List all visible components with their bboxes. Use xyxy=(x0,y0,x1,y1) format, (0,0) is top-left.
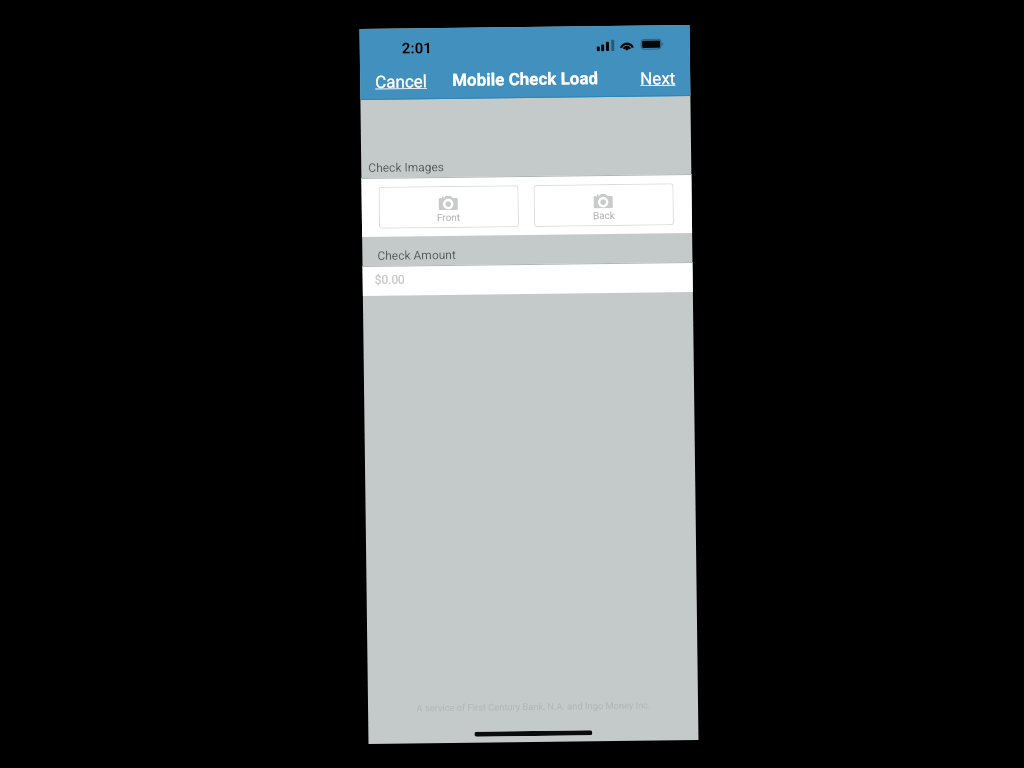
button[interactable]: Capture Front of check xyxy=(378,185,519,229)
button[interactable]: $0.00 xyxy=(362,262,693,296)
staticText: Check Images xyxy=(368,160,444,175)
staticText: 2:01 xyxy=(402,39,433,58)
staticText: Mobile Check Load xyxy=(452,68,598,90)
staticText: Check Amount xyxy=(377,248,456,263)
other: Signal, Wi-Fi and battery status xyxy=(597,38,665,51)
button[interactable]: Next xyxy=(629,63,687,94)
button[interactable]: Cancel xyxy=(364,66,438,97)
staticText: $0.00 xyxy=(375,272,406,287)
staticText: Back xyxy=(593,210,615,222)
staticText: Cancel xyxy=(375,71,427,92)
staticText: Next xyxy=(640,68,676,89)
staticText: Front xyxy=(437,212,461,224)
button[interactable]: Capture Back of check xyxy=(533,183,674,227)
staticText: A service of First Century Bank, N.A. an… xyxy=(416,699,651,713)
